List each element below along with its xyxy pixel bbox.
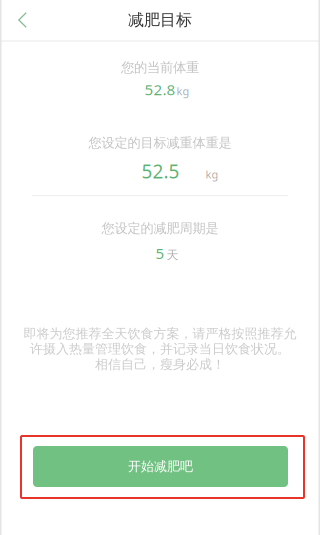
staticText: 您设定的减肥周期是 [101, 220, 218, 237]
staticText: 天 [166, 247, 178, 262]
staticText: kg [176, 83, 189, 98]
staticText: 许摄入热量管理饮食，并记录当日饮食状况。 [30, 341, 290, 357]
button[interactable]: 开始减肥吧 [33, 446, 288, 487]
staticText: 减肥目标 [128, 10, 192, 30]
staticText: 您设定的目标减重体重是 [88, 135, 231, 151]
staticText: 5 [155, 243, 164, 263]
staticText: 52.5 [141, 158, 179, 184]
staticText: kg [205, 167, 218, 182]
staticText: 即将为您推荐全天饮食方案，请严格按照推荐允 [23, 325, 296, 342]
staticText: 开始减肥吧 [128, 458, 193, 475]
button[interactable]: Back [0, 0, 41, 40]
staticText: 52.8 [144, 79, 175, 100]
staticText: 您的当前体重 [121, 59, 199, 76]
staticText: 相信自己，瘦身必成！ [95, 356, 225, 373]
